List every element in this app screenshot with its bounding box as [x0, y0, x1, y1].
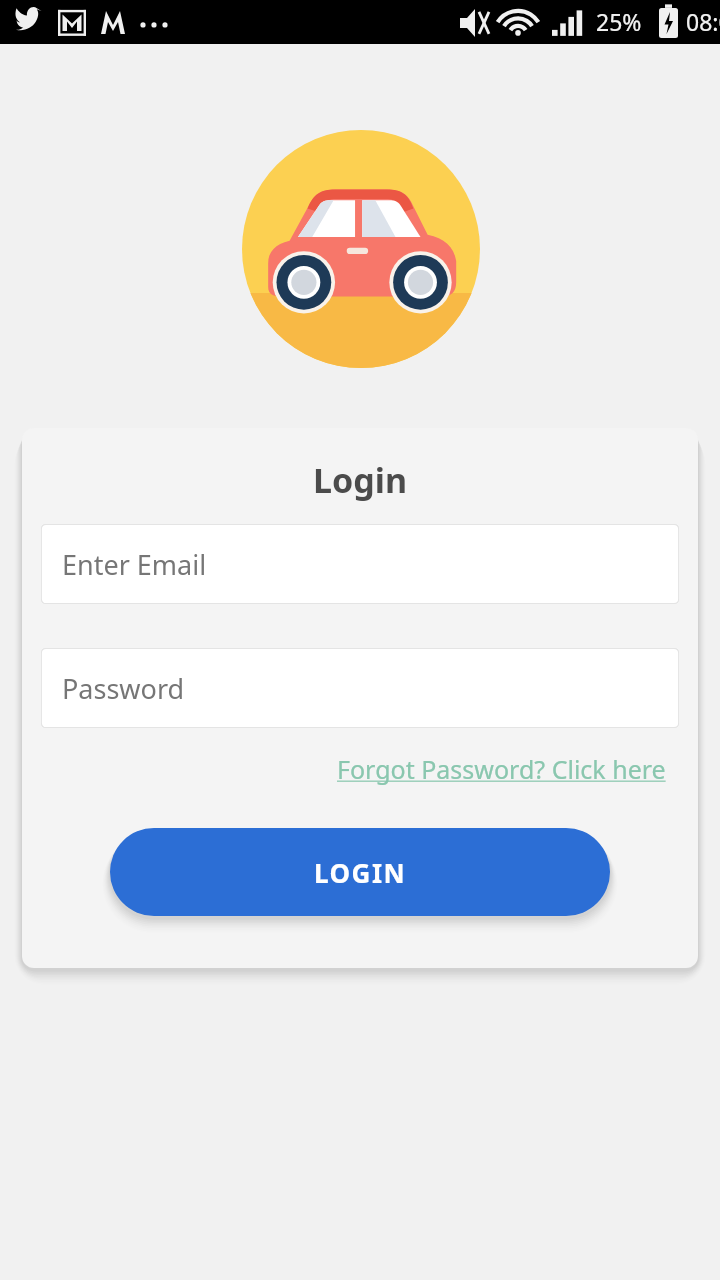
button[interactable]: Enter Email: [41, 524, 679, 604]
staticText: Enter Email: [62, 546, 207, 583]
staticText: Login: [313, 457, 408, 503]
staticText: 25%: [596, 6, 642, 37]
staticText: LOGIN: [314, 855, 407, 890]
other: Car logo: [242, 130, 480, 368]
button[interactable]: Forgot Password? Click here: [337, 752, 666, 786]
staticText: Password: [62, 670, 185, 707]
button[interactable]: Password: [41, 648, 679, 728]
button[interactable]: LOGIN: [110, 828, 610, 916]
staticText: 08:09: [686, 6, 720, 37]
staticText: Forgot Password? Click here: [337, 752, 666, 786]
